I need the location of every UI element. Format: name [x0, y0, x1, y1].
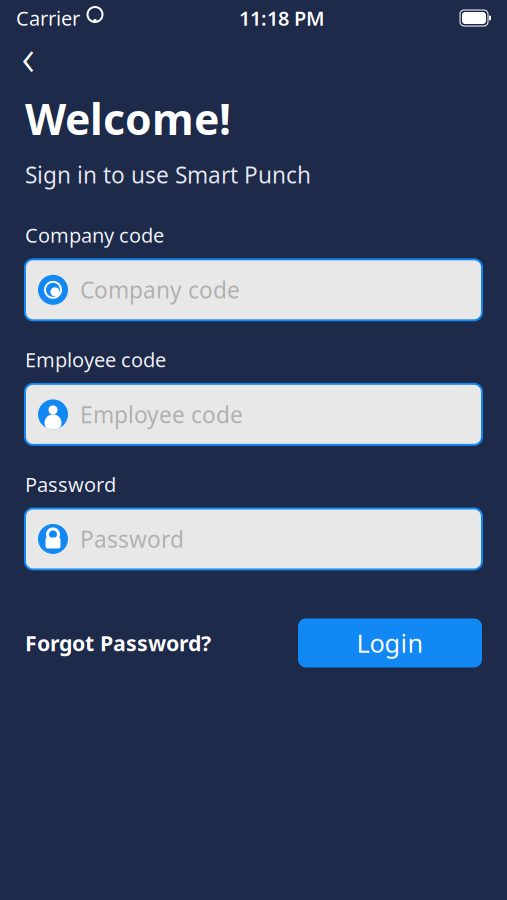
staticText: Welcome!: [25, 90, 231, 147]
staticText: Password: [25, 471, 116, 497]
staticText: Password: [80, 524, 184, 554]
staticText: Carrier: [16, 5, 80, 31]
staticText: ‹: [21, 22, 34, 90]
button[interactable]: Login: [298, 618, 482, 667]
button[interactable]: Forgot Password?: [25, 629, 211, 657]
staticText: Login: [356, 626, 423, 660]
staticText: Company code: [80, 275, 240, 305]
staticText: Forgot Password?: [25, 629, 211, 657]
staticText: Sign in to use Smart Punch: [25, 160, 311, 190]
button[interactable]: Back: [6, 36, 50, 76]
button[interactable]: Password: [25, 508, 482, 569]
staticText: Company code: [25, 222, 164, 248]
staticText: Employee code: [25, 346, 166, 373]
staticText: 11:18 PM: [239, 5, 325, 31]
button[interactable]: Employee code: [25, 384, 482, 445]
button[interactable]: Company code: [25, 259, 482, 320]
staticText: Employee code: [80, 399, 243, 429]
